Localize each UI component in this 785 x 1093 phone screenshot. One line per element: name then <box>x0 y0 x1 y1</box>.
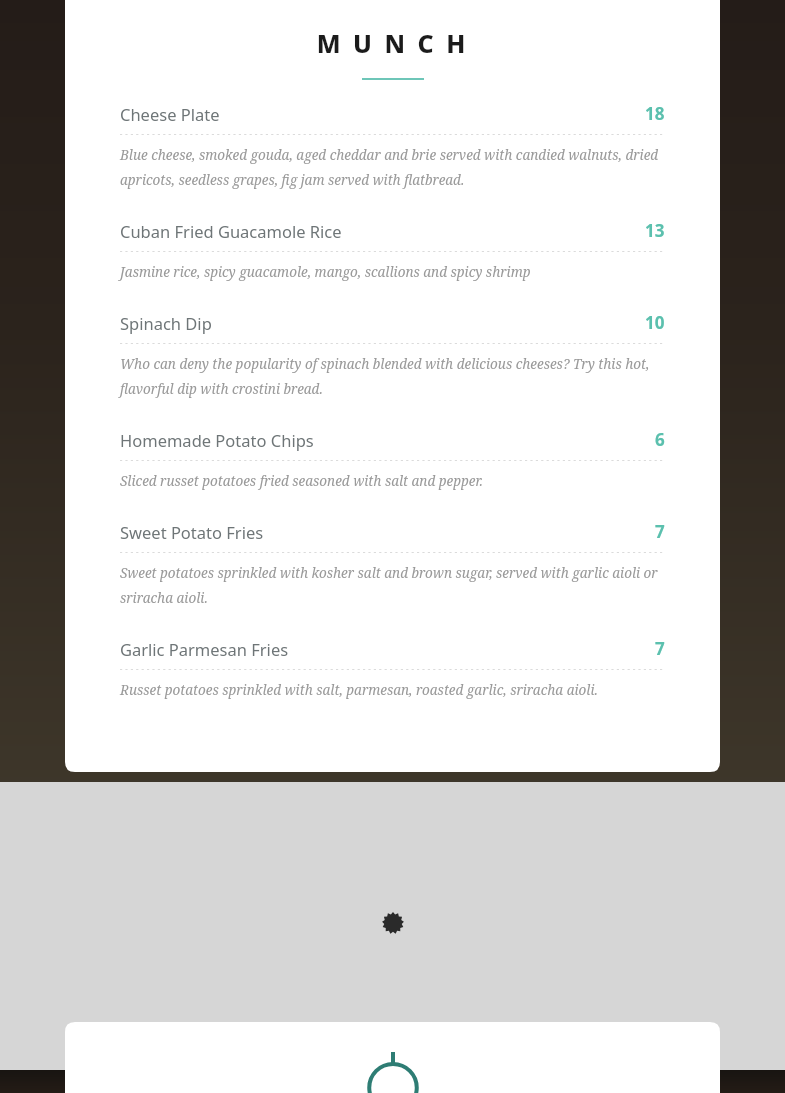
button[interactable]: Award badge <box>382 912 404 934</box>
staticText: 7 <box>655 520 665 543</box>
staticText: Garlic Parmesan Fries <box>120 638 655 660</box>
staticText: Sliced russet potatoes fried seasoned wi… <box>120 472 483 490</box>
staticText: Spinach Dip <box>120 312 645 334</box>
staticText: 18 <box>645 102 665 125</box>
staticText: Who can deny the popularity of spinach b… <box>120 355 665 398</box>
button[interactable]: Homemade Potato Chips <box>120 428 665 490</box>
staticText: 7 <box>655 637 665 660</box>
staticText: Cuban Fried Guacamole Rice <box>120 220 645 242</box>
staticText: 13 <box>645 219 665 242</box>
staticText: Cheese Plate <box>120 103 645 125</box>
staticText: Homemade Potato Chips <box>120 429 655 451</box>
staticText: 10 <box>645 311 665 334</box>
staticText: 6 <box>655 428 665 451</box>
button[interactable]: Sweet Potato Fries <box>120 520 665 607</box>
staticText: Russet potatoes sprinkled with salt, par… <box>120 681 598 699</box>
other: Drinks <box>357 1052 429 1093</box>
staticText: Sweet potatoes sprinkled with kosher sal… <box>120 564 665 607</box>
button[interactable]: Spinach Dip <box>120 311 665 398</box>
staticText: Sweet Potato Fries <box>120 521 655 543</box>
staticText: Jasmine rice, spicy guacamole, mango, sc… <box>120 263 531 281</box>
button[interactable]: Garlic Parmesan Fries <box>120 637 665 699</box>
staticText: M U N C H <box>65 26 720 60</box>
staticText: Blue cheese, smoked gouda, aged cheddar … <box>120 146 665 189</box>
button[interactable]: Cheese Plate <box>120 102 665 189</box>
button[interactable]: Cuban Fried Guacamole Rice <box>120 219 665 281</box>
